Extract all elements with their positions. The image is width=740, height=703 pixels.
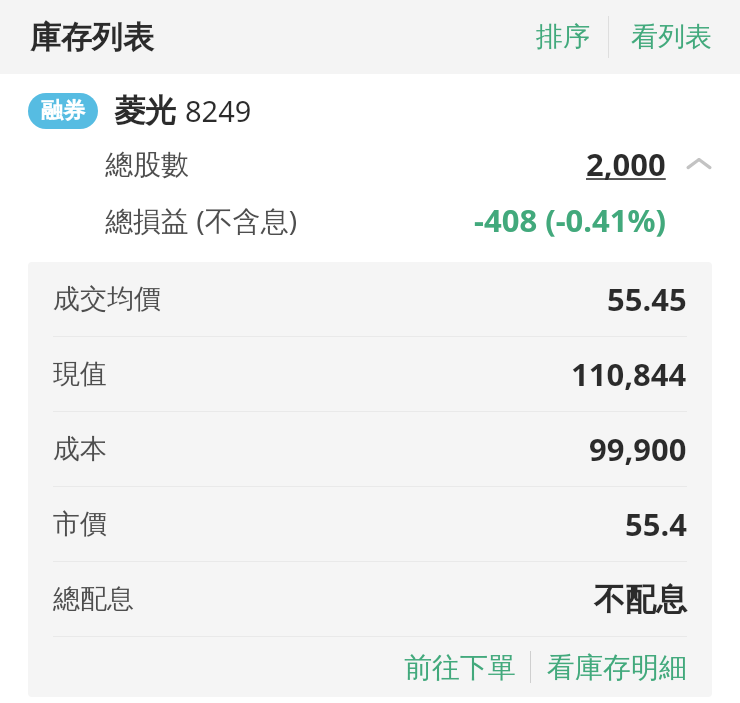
staticText: 99,900 xyxy=(589,428,687,470)
staticText: 55.45 xyxy=(607,278,687,320)
staticText: 總股數 xyxy=(105,147,189,182)
staticText: -408 (-0.41%) xyxy=(474,199,666,241)
staticText: 市價 xyxy=(53,507,107,541)
button[interactable]: 總股數 xyxy=(0,136,740,192)
staticText: 排序 xyxy=(536,20,590,54)
staticText: 8249 xyxy=(185,91,252,130)
staticText: 前往下單 xyxy=(404,650,516,685)
button[interactable]: 排序 xyxy=(518,6,608,68)
button[interactable]: 前往下單 xyxy=(390,640,530,695)
button[interactable]: 成本 xyxy=(28,412,712,486)
button[interactable]: 看列表 xyxy=(609,6,740,68)
staticText: 庫存列表 xyxy=(30,18,154,57)
staticText: 總損益 (不含息) xyxy=(105,201,298,239)
button[interactable]: 成交均價 xyxy=(28,262,712,336)
staticText: 融券 xyxy=(41,97,85,125)
staticText: 成交均價 xyxy=(53,282,161,316)
staticText: 看列表 xyxy=(631,20,712,54)
staticText: 不配息 xyxy=(594,580,687,619)
staticText: 成本 xyxy=(53,432,107,466)
staticText: 菱光 xyxy=(114,91,176,130)
button[interactable]: Collapse xyxy=(680,145,718,183)
staticText: 110,844 xyxy=(571,353,687,395)
button[interactable]: 總損益 (不含息) xyxy=(0,192,740,248)
button[interactable]: 看庫存明細 xyxy=(531,640,687,695)
button[interactable]: 現值 xyxy=(28,337,712,411)
staticText: 現值 xyxy=(53,357,107,391)
staticText: 總配息 xyxy=(53,582,134,616)
button[interactable]: 融券 xyxy=(0,74,740,136)
staticText: 55.4 xyxy=(625,503,687,545)
staticText: 看庫存明細 xyxy=(547,650,687,685)
button[interactable]: 總配息 xyxy=(28,562,712,636)
button[interactable]: 市價 xyxy=(28,487,712,561)
staticText: 2,000 xyxy=(586,143,666,185)
